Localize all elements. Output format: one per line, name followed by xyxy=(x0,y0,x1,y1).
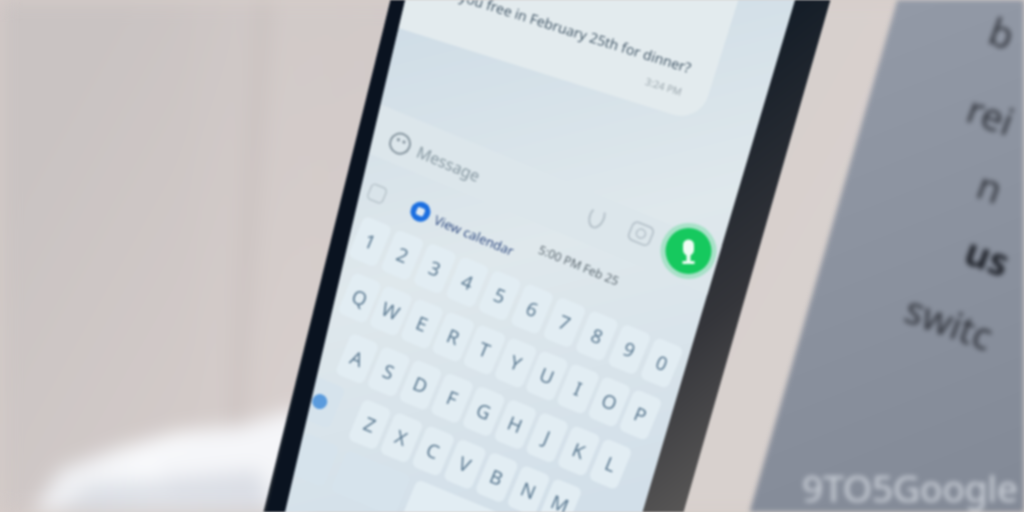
button[interactable]: Phone showing messaging app with keyboar… xyxy=(0,0,1024,512)
